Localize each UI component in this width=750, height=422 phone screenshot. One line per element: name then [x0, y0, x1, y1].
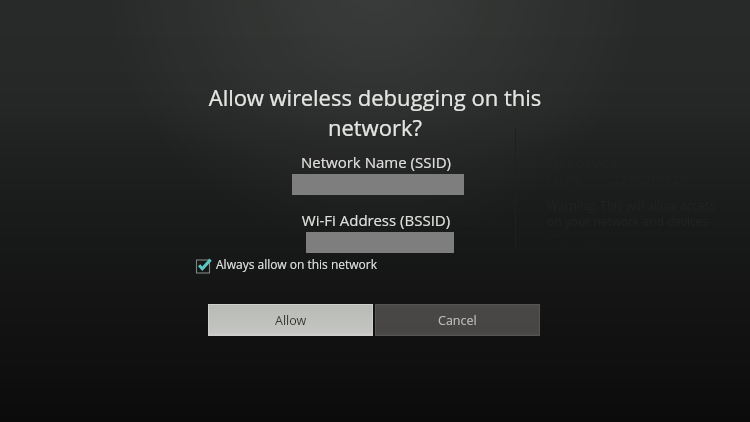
staticText: Cancel: [438, 312, 477, 329]
staticText: Always allow on this network: [216, 256, 378, 272]
staticText: Allow: [275, 312, 307, 329]
staticText: Network Name (SSID): [176, 152, 576, 172]
button[interactable]: Cancel: [375, 304, 540, 336]
button[interactable]: Allow: [208, 304, 373, 336]
staticText: Wi-Fi Address (BSSID): [176, 210, 576, 230]
staticText: Allow wireless debugging on this network…: [175, 82, 575, 142]
button[interactable]: Always allow on this network: [196, 255, 378, 277]
